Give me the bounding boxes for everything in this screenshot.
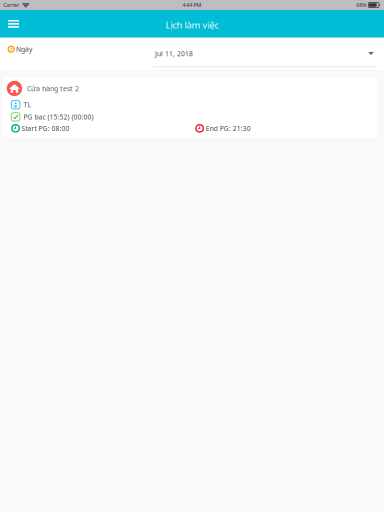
staticText: Ngày [16,45,32,54]
staticText: Carrier [3,1,19,9]
staticText: TL [23,100,30,109]
staticText: 4:44 PM [182,1,201,9]
staticText: Start PG: 08:00 [22,124,70,133]
staticText: PG bac (15:52) (00:00) [23,112,93,121]
staticText: Cửa hàng test 2 [27,84,79,93]
staticText: End PG: 21:30 [206,124,251,133]
button[interactable]: Jul 11, 2018 [153,40,377,68]
button[interactable]: Menu [0,11,27,37]
staticText: 68% [356,1,366,9]
staticText: Jul 11, 2018 [155,49,193,58]
staticText: Lịch làm việc [165,19,218,31]
button[interactable]: Cửa hàng test 2 [3,77,377,137]
